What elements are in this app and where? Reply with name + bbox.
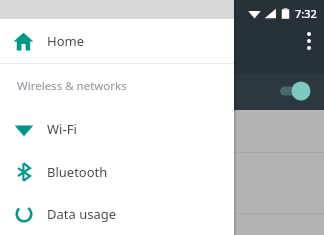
staticText: 7:32 — [295, 6, 317, 21]
button[interactable]: Wi-Fi — [0, 107, 234, 150]
button[interactable]: Home — [0, 19, 234, 63]
button[interactable]: Toggle — [278, 80, 318, 102]
button[interactable]: More options — [298, 28, 320, 54]
button[interactable]: Bluetooth — [0, 150, 234, 193]
staticText: Data usage — [47, 205, 117, 223]
staticText: Wireless & networks — [17, 78, 127, 94]
staticText: Bluetooth — [47, 163, 108, 181]
staticText: Wi-Fi — [47, 120, 77, 138]
button[interactable]: Data usage — [0, 193, 234, 235]
staticText: Home — [47, 32, 84, 50]
